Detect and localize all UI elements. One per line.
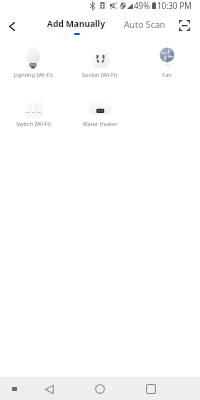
staticText: 49% — [134, 0, 150, 11]
staticText: 10:30 PM — [157, 0, 192, 11]
button[interactable]: Back — [39, 379, 59, 399]
button[interactable]: Back — [3, 17, 21, 35]
button[interactable]: Socket (Wi-Fi) — [66, 46, 133, 79]
button[interactable]: Recent apps — [141, 379, 161, 399]
button[interactable]: Add Manually — [47, 18, 106, 37]
button[interactable]: Lighting (Wi-Fi) — [0, 46, 66, 79]
button[interactable]: Water Heater — [66, 95, 133, 128]
staticText: Socket (Wi-Fi) — [82, 71, 117, 79]
staticText: Water Heater — [82, 120, 118, 128]
button[interactable]: Auto Scan — [124, 19, 166, 31]
staticText: Lighting (Wi-Fi) — [13, 71, 53, 79]
staticText: Switch (Wi-Fi) — [16, 120, 51, 128]
button[interactable]: Scan — [176, 17, 192, 33]
button[interactable]: Switch (Wi-Fi) — [0, 95, 66, 128]
staticText: Fan — [162, 71, 172, 79]
staticText: Add Manually — [47, 18, 106, 30]
button[interactable]: Fan — [133, 46, 200, 79]
button[interactable]: Home — [90, 379, 110, 399]
